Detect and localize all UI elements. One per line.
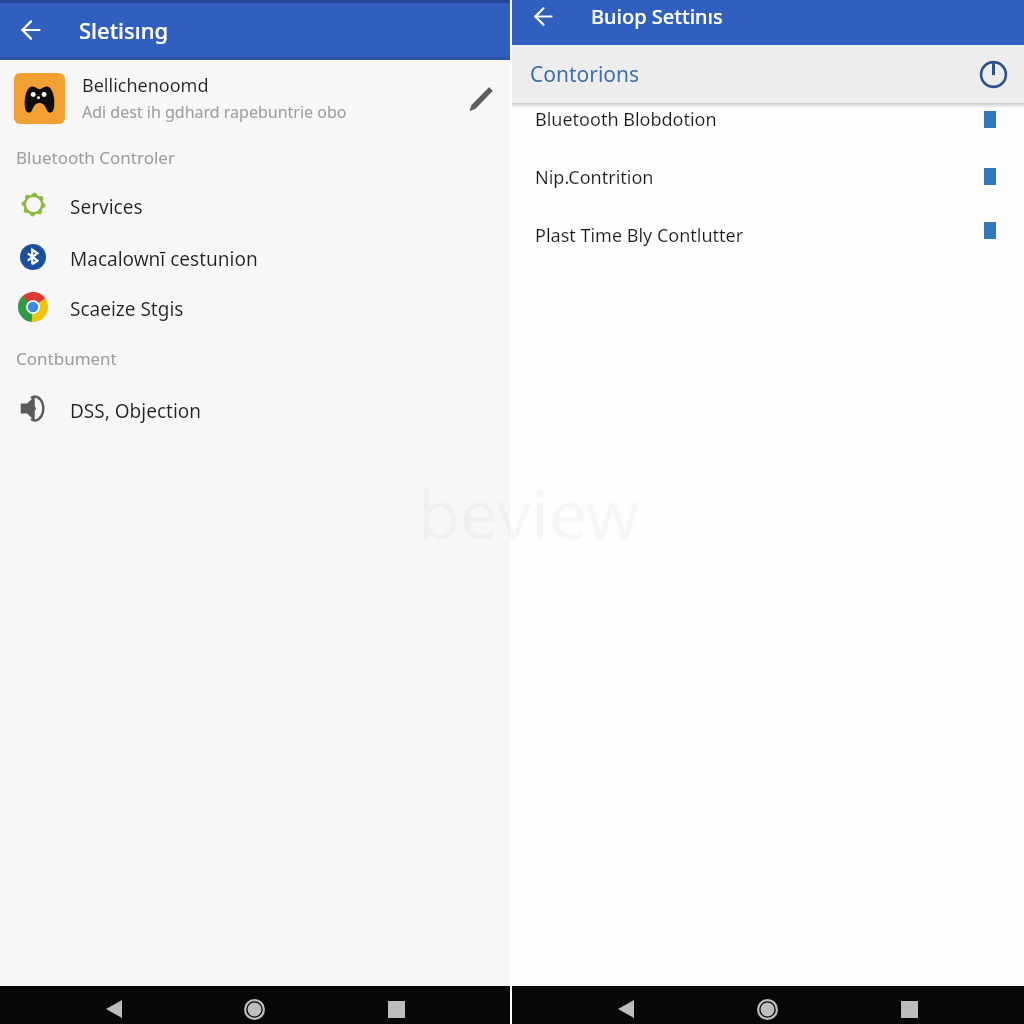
staticText: DSS, Objection bbox=[70, 398, 202, 424]
staticText: Scaeize Stgis bbox=[70, 296, 184, 322]
button[interactable]: Bluetooth Blobdotion bbox=[512, 90, 1024, 148]
staticText: Contorions bbox=[530, 60, 640, 89]
button[interactable]: Contorions bbox=[512, 45, 1024, 103]
staticText: Macalownī cestunion bbox=[70, 246, 258, 272]
button[interactable]: Scaeize Stgis bbox=[0, 283, 510, 335]
button[interactable]: Home bbox=[745, 994, 789, 1024]
button[interactable]: Back bbox=[604, 994, 648, 1024]
button[interactable]: Power bbox=[962, 45, 1024, 103]
button[interactable]: Back bbox=[92, 994, 136, 1024]
staticText: Bluetooth Controler bbox=[16, 146, 175, 169]
staticText: Buiop Settinıs bbox=[591, 3, 723, 30]
staticText: Bellichenoomd bbox=[82, 73, 209, 98]
button[interactable]: Edit bbox=[453, 62, 507, 134]
button[interactable]: DSS, Objection bbox=[0, 385, 510, 437]
staticText: Bluetooth Blobdotion bbox=[535, 107, 717, 132]
staticText: Contbument bbox=[16, 347, 117, 370]
staticText: Sletisıng bbox=[79, 15, 169, 45]
button[interactable]: Recents bbox=[374, 994, 418, 1024]
staticText: beview bbox=[418, 466, 640, 559]
button[interactable]: Bellichenoomd bbox=[0, 62, 510, 134]
staticText: Plast Time Bly Contlutter bbox=[535, 223, 744, 248]
button[interactable]: Plast Time Bly Contlutter bbox=[512, 206, 1024, 264]
button[interactable]: Macalownī cestunion bbox=[0, 233, 510, 285]
staticText: Services bbox=[70, 194, 143, 220]
button[interactable]: Home bbox=[232, 994, 276, 1024]
button[interactable]: Back bbox=[512, 0, 575, 33]
button[interactable]: Back bbox=[0, 0, 62, 60]
staticText: Nip.Contrition bbox=[535, 165, 654, 190]
button[interactable]: Nip.Contrition bbox=[512, 148, 1024, 206]
button[interactable]: Services bbox=[0, 181, 510, 233]
button[interactable]: Recents bbox=[887, 994, 931, 1024]
staticText: Adi dest ih gdhard rapebuntrie obo bbox=[82, 101, 347, 123]
